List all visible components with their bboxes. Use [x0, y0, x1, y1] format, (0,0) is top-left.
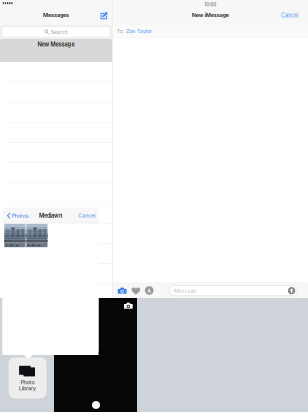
staticText: New Message — [37, 41, 74, 48]
staticText: New iMessage — [192, 12, 229, 18]
button[interactable]: Cancel — [76, 210, 97, 221]
staticText: Zoe Taylor — [126, 28, 152, 34]
button[interactable]: Digital Touch — [129, 283, 143, 298]
staticText: Cancel — [78, 213, 95, 219]
staticText: iMessage — [174, 288, 197, 294]
button[interactable]: Photo — [9, 357, 47, 398]
button[interactable]: Camera — [115, 284, 129, 297]
button[interactable]: Photo 2 — [26, 224, 47, 247]
button[interactable]: Photos — [5, 210, 31, 221]
button[interactable]: Compose — [100, 11, 108, 20]
button[interactable]: Take photo — [92, 401, 100, 409]
staticText: Messages — [43, 12, 69, 18]
staticText: 10:00 — [204, 2, 216, 7]
staticText: Library — [19, 385, 36, 392]
button[interactable]: App Store — [143, 283, 156, 298]
button[interactable]: Send — [288, 287, 295, 294]
button[interactable]: Cancel — [278, 9, 301, 21]
button[interactable]: Zoe Taylor — [126, 28, 152, 34]
button[interactable]: New Message — [0, 39, 112, 62]
staticText: To: — [117, 28, 124, 34]
staticText: Mediawn — [39, 212, 62, 219]
button[interactable]: Photo 1 — [4, 224, 25, 247]
staticText: Cancel — [281, 12, 298, 19]
staticText: Search — [51, 29, 68, 35]
staticText: Photo — [21, 379, 35, 386]
staticText: Photos — [12, 212, 29, 219]
button[interactable]: Switch camera — [122, 300, 135, 311]
